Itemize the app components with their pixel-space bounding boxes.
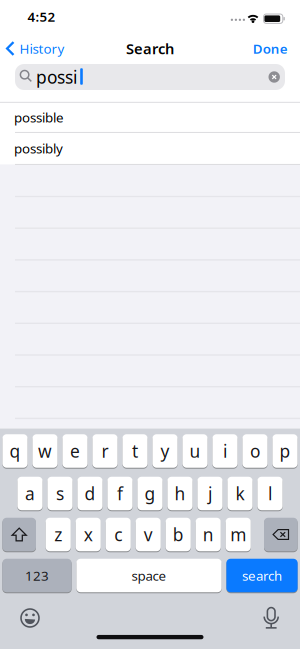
- staticText: z: [54, 523, 62, 546]
- button[interactable]: k: [227, 476, 253, 511]
- staticText: j: [208, 482, 212, 505]
- staticText: t: [132, 439, 138, 462]
- button[interactable]: f: [107, 476, 133, 511]
- button[interactable]: c: [106, 517, 131, 552]
- button[interactable]: s: [47, 476, 73, 511]
- button[interactable]: g: [137, 476, 163, 511]
- staticText: x: [84, 523, 93, 546]
- button[interactable]: v: [136, 517, 161, 552]
- button[interactable]: a: [17, 476, 43, 511]
- button[interactable]: Delete: [264, 517, 298, 552]
- button[interactable]: possibly: [0, 133, 300, 164]
- button[interactable]: Dictate: [261, 607, 282, 629]
- button[interactable]: t: [122, 434, 148, 468]
- button[interactable]: Clear text: [268, 71, 280, 83]
- staticText: s: [56, 482, 64, 505]
- staticText: f: [117, 482, 123, 505]
- staticText: d: [84, 482, 95, 505]
- button[interactable]: y: [152, 434, 178, 468]
- button[interactable]: d: [77, 476, 103, 511]
- staticText: w: [38, 439, 52, 462]
- staticText: 123: [25, 567, 49, 584]
- staticText: h: [174, 482, 185, 505]
- button[interactable]: Shift: [2, 517, 36, 552]
- staticText: e: [70, 439, 80, 462]
- button[interactable]: p: [272, 434, 298, 468]
- button[interactable]: l: [257, 476, 283, 511]
- staticText: o: [250, 439, 260, 462]
- staticText: r: [101, 439, 108, 462]
- button[interactable]: z: [46, 517, 71, 552]
- button[interactable]: h: [167, 476, 193, 511]
- button[interactable]: x: [76, 517, 101, 552]
- staticText: l: [268, 482, 272, 505]
- staticText: possible: [14, 108, 64, 126]
- button[interactable]: possi: [15, 64, 285, 90]
- button[interactable]: Done: [253, 40, 288, 57]
- staticText: History: [19, 40, 64, 57]
- button[interactable]: e: [62, 434, 88, 468]
- staticText: 4:52: [27, 8, 55, 25]
- staticText: p: [279, 439, 290, 462]
- staticText: v: [144, 523, 153, 546]
- button[interactable]: space: [76, 558, 222, 593]
- button[interactable]: search: [226, 558, 298, 593]
- staticText: Search: [126, 39, 174, 58]
- button[interactable]: b: [166, 517, 191, 552]
- staticText: n: [203, 523, 214, 546]
- staticText: y: [160, 439, 169, 462]
- staticText: c: [114, 523, 122, 546]
- staticText: k: [235, 482, 244, 505]
- button[interactable]: r: [92, 434, 118, 468]
- staticText: a: [25, 482, 35, 505]
- staticText: b: [173, 523, 184, 546]
- staticText: possibly: [14, 139, 63, 157]
- staticText: search: [242, 567, 282, 584]
- staticText: possi: [36, 65, 77, 88]
- staticText: Done: [253, 40, 288, 57]
- button[interactable]: w: [32, 434, 58, 468]
- button[interactable]: possible: [0, 102, 300, 132]
- button[interactable]: History: [5, 40, 64, 57]
- staticText: g: [144, 482, 155, 505]
- staticText: i: [223, 439, 227, 462]
- staticText: m: [230, 523, 246, 546]
- staticText: space: [131, 567, 166, 584]
- button[interactable]: o: [242, 434, 268, 468]
- button[interactable]: j: [197, 476, 223, 511]
- button[interactable]: m: [226, 517, 251, 552]
- button[interactable]: n: [196, 517, 221, 552]
- button[interactable]: q: [2, 434, 28, 468]
- button[interactable]: u: [182, 434, 208, 468]
- button[interactable]: Emoji: [20, 608, 40, 628]
- button[interactable]: 123: [2, 558, 72, 593]
- staticText: u: [189, 439, 200, 462]
- staticText: q: [9, 439, 20, 462]
- button[interactable]: i: [212, 434, 238, 468]
